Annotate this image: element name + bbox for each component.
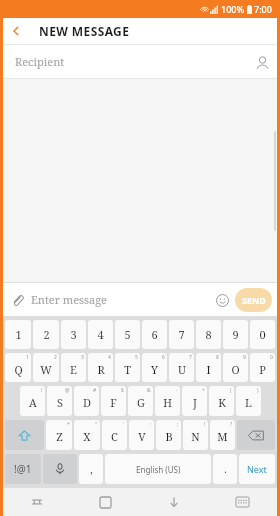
staticText: NEW MESSAGE	[39, 23, 130, 39]
staticText: 4	[108, 354, 111, 361]
staticText: A	[29, 395, 37, 410]
staticText: !	[204, 421, 206, 428]
staticText: !	[41, 387, 43, 394]
button[interactable]: 6	[142, 320, 167, 349]
staticText: N	[191, 429, 200, 444]
staticText: ;	[177, 421, 179, 428]
button[interactable]: '	[102, 420, 127, 450]
button[interactable]: (	[209, 386, 234, 416]
button[interactable]: ?	[210, 420, 235, 450]
button[interactable]: 2	[33, 353, 59, 382]
staticText: M	[217, 429, 228, 444]
button[interactable]: Voice input	[43, 454, 77, 484]
staticText: 3	[70, 327, 77, 342]
staticText: 7	[178, 327, 185, 342]
staticText: (	[230, 387, 232, 394]
button[interactable]: Backspace	[237, 420, 275, 450]
button[interactable]: 3	[61, 320, 86, 349]
button[interactable]: 0	[250, 320, 275, 349]
button[interactable]: 6	[142, 353, 167, 382]
button[interactable]: "	[74, 420, 100, 450]
staticText: R	[97, 362, 105, 377]
button[interactable]: Recipient	[3, 45, 277, 78]
button[interactable]: 4	[88, 320, 113, 349]
staticText: H	[163, 395, 172, 410]
button[interactable]: 0	[250, 353, 275, 382]
button[interactable]: 4	[88, 353, 113, 382]
staticText: G	[137, 395, 145, 410]
button[interactable]: Space	[105, 454, 211, 484]
button[interactable]: .	[213, 454, 237, 484]
button[interactable]: Hide keyboard	[139, 488, 208, 516]
button[interactable]: Symbols	[5, 454, 41, 484]
staticText: Y	[151, 362, 158, 377]
staticText: 0	[270, 354, 273, 361]
button[interactable]: 9	[223, 353, 248, 382]
staticText: SEND	[242, 294, 266, 306]
button[interactable]: 1	[5, 320, 31, 349]
staticText: 9	[243, 354, 246, 361]
button[interactable]: $	[101, 386, 126, 416]
button[interactable]: 5	[115, 353, 140, 382]
staticText: C	[111, 429, 118, 444]
staticText: D	[83, 395, 91, 410]
button[interactable]: 8	[196, 353, 221, 382]
button[interactable]: Switch keyboard	[208, 488, 277, 516]
staticText: -	[176, 387, 178, 394]
button[interactable]: 9	[223, 320, 248, 349]
staticText: Z	[56, 429, 63, 444]
button[interactable]: +	[182, 386, 207, 416]
button[interactable]: !	[20, 386, 45, 416]
button[interactable]: 7	[169, 320, 194, 349]
staticText: U	[178, 362, 186, 377]
button[interactable]: Recent apps	[3, 488, 71, 516]
staticText: L	[245, 395, 252, 410]
staticText: 7:00	[254, 3, 272, 15]
button[interactable]: *	[46, 420, 72, 450]
staticText: 6	[151, 327, 158, 342]
staticText: W	[40, 362, 52, 377]
staticText: :	[150, 421, 152, 428]
staticText: I	[206, 362, 211, 377]
staticText: E	[70, 362, 77, 377]
staticText: B	[165, 429, 173, 444]
staticText: 7	[189, 354, 192, 361]
staticText: ,	[90, 462, 93, 476]
button[interactable]: Next	[239, 454, 275, 484]
button[interactable]: Enter message	[31, 292, 209, 307]
button[interactable]: -	[155, 386, 180, 416]
button[interactable]: )	[236, 386, 261, 416]
button[interactable]: :	[129, 420, 154, 450]
staticText: 5	[135, 354, 138, 361]
staticText: 1	[15, 327, 22, 342]
button[interactable]: !	[183, 420, 208, 450]
staticText: O	[231, 362, 240, 377]
button[interactable]: #	[74, 386, 99, 416]
button[interactable]: SEND	[235, 288, 272, 312]
button[interactable]: Add recipient from contacts	[247, 47, 277, 77]
button[interactable]: 5	[115, 320, 140, 349]
button[interactable]: ,	[79, 454, 103, 484]
button[interactable]: 2	[33, 320, 59, 349]
button[interactable]: @	[47, 386, 72, 416]
button[interactable]: 8	[196, 320, 221, 349]
staticText: @	[65, 387, 70, 394]
button[interactable]: 3	[61, 353, 86, 382]
staticText: 2	[43, 327, 50, 342]
staticText: T	[124, 362, 131, 377]
button[interactable]: &	[128, 386, 153, 416]
button[interactable]: Back	[3, 18, 29, 44]
staticText: K	[218, 395, 226, 410]
button[interactable]: Home	[71, 488, 139, 516]
button[interactable]: Insert emoji	[209, 287, 235, 313]
staticText: 3	[81, 354, 84, 361]
button[interactable]: 1	[5, 353, 31, 382]
staticText: &	[147, 387, 151, 394]
staticText: 0	[259, 327, 266, 342]
button[interactable]: Attach file	[3, 286, 31, 314]
button[interactable]: ;	[156, 420, 181, 450]
staticText: $	[121, 387, 124, 394]
staticText: 2	[54, 354, 57, 361]
button[interactable]: 7	[169, 353, 194, 382]
button[interactable]: Shift	[5, 420, 44, 450]
